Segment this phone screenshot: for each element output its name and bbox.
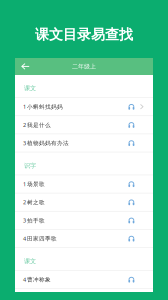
staticText: 3 拍手歌 [23,216,45,224]
button[interactable]: 2 树之歌 [15,193,153,212]
staticText: 4 田家四季歌 [23,235,57,242]
staticText: 1 小蝌蚪找妈妈 [23,103,63,110]
button[interactable]: 3 拍手歌 [15,212,153,230]
staticText: 课文 [24,84,36,92]
button[interactable]: 2 我是什么 [15,116,153,134]
staticText: 课文目录易查找 [35,26,133,43]
button[interactable]: 4 田家四季歌 [15,230,153,248]
button[interactable]: Back [15,58,41,75]
staticText: 2 我是什么 [23,121,51,129]
staticText: 4 曹冲称象 [23,276,51,283]
staticText: 二年级上 [72,63,96,70]
staticText: 2 树之歌 [23,198,45,206]
button[interactable]: 1 小蝌蚪找妈妈 [15,98,153,116]
button[interactable]: 4 曹冲称象 [15,271,153,289]
button[interactable]: 1 场景歌 [15,175,153,193]
button[interactable]: 3 植物妈妈有办法 [15,134,153,152]
staticText: 课文 [24,257,36,265]
staticText: 识字 [24,162,36,169]
staticText: 1 场景歌 [23,180,45,188]
staticText: 3 植物妈妈有办法 [23,139,69,147]
